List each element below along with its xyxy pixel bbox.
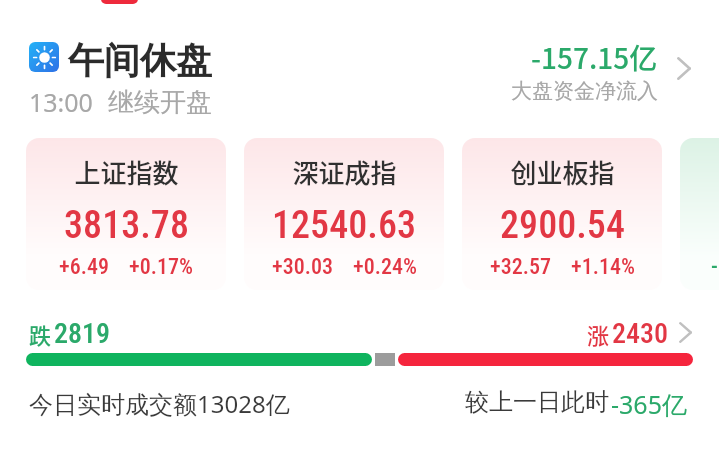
- staticText: 今日实时成交额13028亿: [29, 387, 290, 420]
- staticText: +0.24%: [353, 254, 417, 280]
- button[interactable]: 涨跌家数详情: [679, 322, 692, 343]
- staticText: 深证成指: [292, 153, 397, 191]
- staticText: 创业板指: [510, 153, 615, 191]
- staticText: -157.15亿: [531, 37, 658, 78]
- staticText: 上证指数: [74, 153, 179, 191]
- staticText: 2430: [612, 317, 669, 350]
- staticText: 12540.63: [272, 203, 416, 248]
- button[interactable]: 深证成指: [244, 138, 444, 290]
- staticText: 涨: [587, 318, 610, 350]
- staticText: 继续开盘: [108, 86, 212, 119]
- staticText: 午间休盘: [68, 38, 212, 83]
- button[interactable]: 大盘资金净流入详情: [677, 57, 691, 80]
- staticText: +32.57: [490, 254, 551, 280]
- staticText: 2819: [54, 317, 111, 350]
- staticText: 跌: [29, 318, 52, 350]
- staticText: +6.49: [59, 254, 109, 280]
- button[interactable]: 中证500: [680, 138, 719, 290]
- staticText: 2900.54: [500, 203, 625, 248]
- staticText: +0.17%: [129, 254, 193, 280]
- staticText: +1.14%: [571, 254, 635, 280]
- button[interactable]: 上证指数: [26, 138, 226, 290]
- staticText: 5985.31: [718, 203, 719, 248]
- staticText: -365亿: [611, 387, 687, 421]
- staticText: 3813.78: [64, 203, 189, 248]
- staticText: +30.03: [272, 254, 333, 280]
- staticText: 较上一日此时: [465, 387, 609, 417]
- staticText: 13:00: [29, 85, 93, 119]
- staticText: 大盘资金净流入: [511, 78, 658, 104]
- staticText: -14.06: [711, 254, 719, 280]
- button[interactable]: 创业板指: [462, 138, 662, 290]
